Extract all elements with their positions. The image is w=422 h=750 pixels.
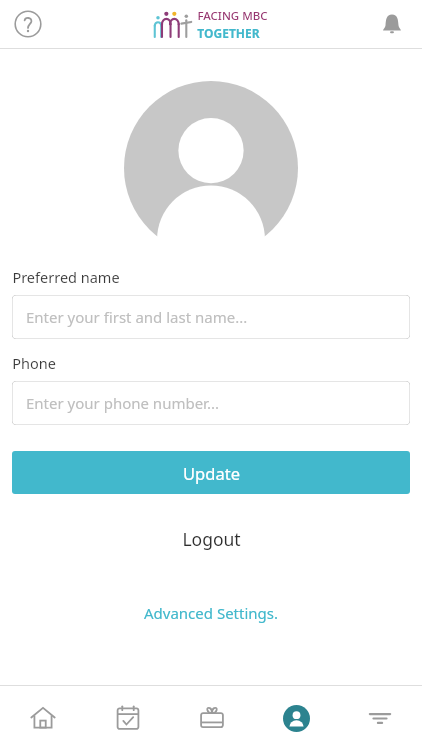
button[interactable]: Logout <box>162 522 261 556</box>
button[interactable]: Help <box>8 4 48 44</box>
button[interactable]: Rewards <box>170 686 254 750</box>
staticText: FACING MBC <box>197 8 268 24</box>
staticText: Enter your phone number... <box>26 393 219 413</box>
button[interactable]: Home <box>0 686 85 750</box>
staticText: Phone <box>12 353 56 373</box>
button[interactable]: Update <box>12 451 410 494</box>
staticText: Logout <box>182 527 241 551</box>
staticText: Enter your first and last name... <box>26 307 248 327</box>
staticText: Preferred name <box>12 267 120 287</box>
staticText: Update <box>183 462 240 484</box>
button[interactable]: Notifications <box>372 4 412 44</box>
button[interactable]: Advanced Settings. <box>124 598 298 628</box>
button[interactable]: Enter your first and last name... <box>12 295 410 339</box>
button[interactable]: Profile <box>254 686 338 750</box>
staticText: TOGETHER <box>197 25 260 41</box>
staticText: Advanced Settings. <box>144 603 278 623</box>
button[interactable]: Enter your phone number... <box>12 381 410 425</box>
button[interactable]: Calendar <box>85 686 170 750</box>
button[interactable]: More options <box>338 686 422 750</box>
